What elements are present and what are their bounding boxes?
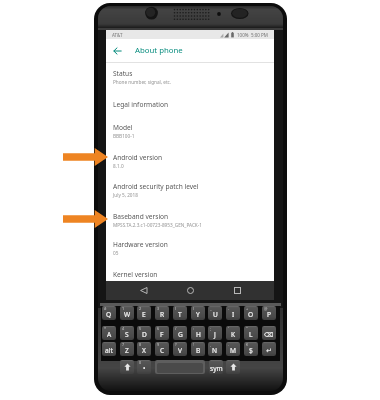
staticText: •	[143, 364, 146, 373]
staticText: $	[249, 346, 253, 355]
staticText: @	[264, 306, 268, 311]
staticText: Status	[113, 69, 133, 78]
staticText: ;	[210, 326, 212, 331]
staticText: I	[232, 310, 235, 319]
button[interactable]: €	[244, 342, 258, 356]
button[interactable]: 9	[155, 342, 169, 356]
staticText: 05	[113, 250, 119, 256]
button[interactable]: #	[102, 306, 116, 320]
staticText: F	[160, 330, 164, 339]
button[interactable]: _	[208, 306, 222, 320]
button[interactable]: :	[191, 326, 205, 340]
button[interactable]: ?	[173, 342, 187, 356]
button[interactable]: Back	[109, 43, 125, 59]
button[interactable]: @	[262, 306, 276, 320]
staticText: Q	[106, 310, 112, 319]
staticText: O	[248, 310, 254, 319]
staticText: ,	[210, 342, 212, 347]
button[interactable]: 7	[120, 342, 134, 356]
button[interactable]: Home	[180, 281, 200, 300]
button[interactable]: Baseband version	[106, 206, 274, 234]
button[interactable]: (	[173, 306, 187, 320]
button[interactable]: '	[226, 326, 240, 340]
staticText: C	[160, 346, 165, 355]
staticText: 4	[122, 326, 125, 331]
staticText: 2	[139, 306, 142, 311]
button[interactable]: 3	[155, 306, 169, 320]
staticText: 100%	[237, 32, 249, 38]
button[interactable]: !	[191, 342, 205, 356]
staticText: 3	[157, 306, 160, 311]
staticText: L	[249, 330, 253, 339]
button[interactable]: Shift	[226, 360, 240, 374]
staticText: Phone number, signal, etc.	[113, 79, 172, 85]
staticText: Z	[125, 346, 129, 355]
staticText: alt	[105, 346, 113, 355]
staticText: 5:00 PM	[251, 32, 268, 38]
staticText: W	[124, 310, 131, 319]
button[interactable]: 0	[137, 360, 151, 374]
staticText: +	[246, 306, 249, 311]
button[interactable]: )	[191, 306, 205, 320]
staticText: 8.1.0	[113, 163, 124, 169]
staticText: Legal information	[113, 100, 169, 109]
staticText: E	[142, 310, 146, 319]
button[interactable]: alt	[102, 342, 116, 356]
button[interactable]: Model	[106, 117, 274, 147]
button[interactable]: ⌫	[262, 326, 276, 340]
button[interactable]: 5	[137, 326, 151, 340]
button[interactable]: ↵	[262, 342, 276, 356]
staticText: V	[178, 346, 182, 355]
staticText: Y	[196, 310, 200, 319]
button[interactable]: +	[244, 306, 258, 320]
staticText: ?	[175, 342, 177, 347]
staticText: G	[178, 330, 183, 339]
staticText: sym	[210, 364, 223, 373]
button[interactable]: 6	[155, 326, 169, 340]
button[interactable]: *	[102, 326, 116, 340]
button[interactable]: ;	[208, 326, 222, 340]
button[interactable]: "	[244, 326, 258, 340]
button[interactable]: Space	[155, 360, 205, 374]
button[interactable]: Back	[133, 281, 153, 300]
staticText: ↵	[266, 347, 272, 355]
staticText: BBB100-1	[113, 133, 135, 139]
staticText: *	[104, 326, 107, 331]
staticText: Hardware version	[113, 240, 168, 249]
button[interactable]: Android version	[106, 147, 274, 176]
staticText: ⌫	[264, 331, 274, 339]
staticText: B	[196, 346, 201, 355]
button[interactable]: 8	[137, 342, 151, 356]
staticText: 8	[139, 342, 142, 347]
button[interactable]: ,	[208, 342, 222, 356]
button[interactable]: Status	[106, 63, 274, 94]
staticText: -	[228, 306, 230, 311]
button[interactable]: -	[226, 306, 240, 320]
staticText: About phone	[135, 45, 183, 56]
staticText: Android version	[113, 153, 163, 162]
staticText: Android security patch level	[113, 182, 199, 191]
staticText: H	[196, 330, 201, 339]
button[interactable]: Hardware version	[106, 234, 274, 264]
staticText: Baseband version	[113, 212, 169, 221]
button[interactable]: sym	[209, 360, 223, 374]
button[interactable]: Shift	[120, 360, 134, 374]
button[interactable]: Legal information	[106, 94, 274, 117]
staticText: P	[267, 310, 271, 319]
staticText: 9	[157, 342, 160, 347]
button[interactable]: 4	[120, 326, 134, 340]
staticText: M	[230, 346, 236, 355]
staticText: '	[228, 326, 229, 331]
button[interactable]: .	[226, 342, 240, 356]
staticText: X	[142, 346, 146, 355]
staticText: Kernel version	[113, 270, 158, 279]
staticText: T	[178, 310, 182, 319]
button[interactable]: /	[173, 326, 187, 340]
button[interactable]: 1	[120, 306, 134, 320]
button[interactable]: Android security patch level	[106, 176, 274, 206]
staticText: (	[175, 306, 177, 311]
button[interactable]: Recent apps	[227, 281, 247, 300]
staticText: :	[193, 326, 195, 331]
button[interactable]: 2	[137, 306, 151, 320]
button[interactable]: Kernel version	[106, 264, 274, 290]
